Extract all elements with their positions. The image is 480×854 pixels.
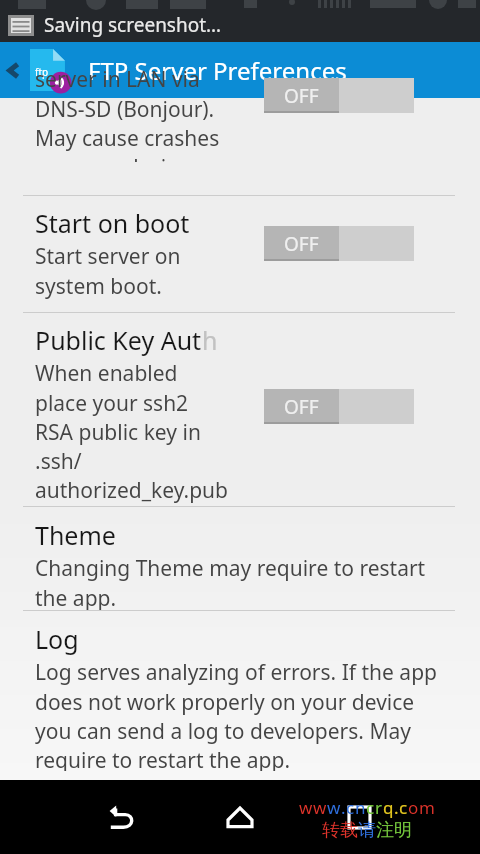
staticText: OFF	[284, 394, 319, 420]
staticText: 明	[394, 819, 412, 842]
staticText: c	[366, 796, 375, 819]
button[interactable]: Theme	[0, 507, 480, 610]
button[interactable]: Public Key Aut	[0, 313, 480, 506]
button[interactable]: Home	[211, 788, 269, 846]
staticText: w	[299, 796, 313, 819]
staticText: Public Key Aut	[35, 323, 202, 357]
staticText: 注	[376, 819, 394, 842]
staticText: server in LAN via DNS-SD (Bonjour). May …	[35, 65, 220, 162]
staticText: .	[341, 796, 346, 819]
staticText: n	[355, 796, 366, 819]
button[interactable]: Log	[0, 611, 480, 771]
staticText: 请	[358, 819, 376, 842]
staticText: Saving screenshot…	[44, 12, 222, 38]
button[interactable]: Toggle, off	[264, 226, 414, 261]
staticText: Start server on system boot.	[35, 242, 181, 300]
staticText: Log serves analyzing of errors. If the a…	[35, 658, 437, 771]
staticText: w	[313, 796, 327, 819]
button[interactable]: Start on boot	[0, 196, 480, 312]
staticText: o	[408, 796, 419, 819]
staticText: 载	[340, 819, 358, 842]
staticText: q	[383, 796, 394, 819]
staticText: OFF	[284, 231, 319, 257]
button[interactable]: Back	[92, 788, 150, 846]
button[interactable]: Toggle, off	[264, 389, 414, 424]
staticText: .	[394, 796, 399, 819]
staticText: c	[399, 796, 408, 819]
staticText: r	[375, 796, 383, 819]
staticText: Theme	[35, 518, 116, 552]
staticText: w	[327, 796, 341, 819]
staticText: 转	[322, 819, 340, 842]
staticText: ftp	[35, 65, 49, 79]
staticText: Log	[35, 622, 79, 656]
button[interactable]: Recent apps	[330, 788, 388, 846]
staticText: Changing Theme may require to restart th…	[35, 554, 426, 610]
staticText: c	[346, 796, 355, 819]
staticText: h	[202, 323, 218, 357]
staticText: OFF	[284, 83, 319, 109]
button[interactable]: Navigate up	[0, 42, 26, 98]
staticText: m	[419, 796, 435, 819]
staticText: Start on boot	[35, 206, 190, 240]
staticText: When enabled place your ssh2 RSA public …	[35, 359, 229, 506]
staticText: FTP Server Preferences	[88, 54, 347, 87]
button[interactable]: Toggle, off	[264, 78, 414, 113]
